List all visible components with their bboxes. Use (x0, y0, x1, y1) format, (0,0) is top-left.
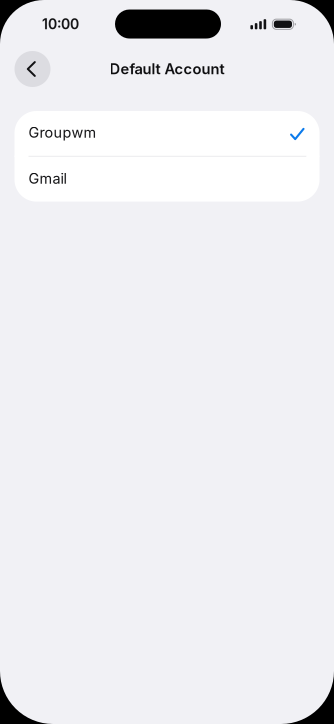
button[interactable]: Groupwm (14, 111, 319, 156)
button[interactable]: Back (14, 51, 50, 87)
staticText: 10:00 (42, 16, 79, 33)
staticText: Default Account (109, 60, 224, 78)
staticText: Gmail (28, 170, 66, 187)
button[interactable]: Gmail (14, 157, 319, 202)
staticText: Groupwm (28, 124, 96, 141)
